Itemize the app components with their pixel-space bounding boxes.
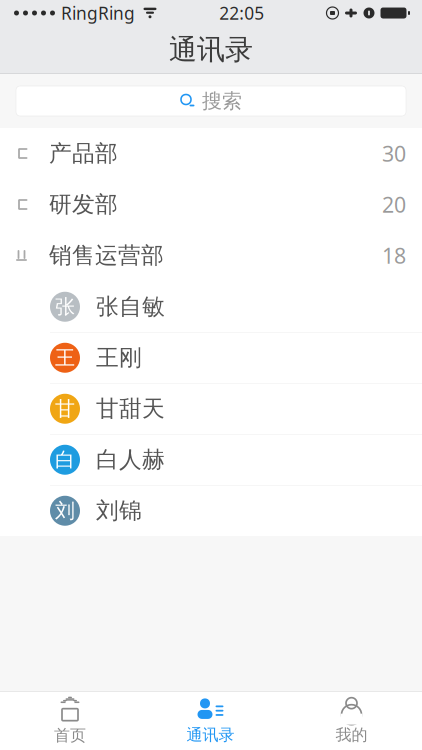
staticText: 18 [382, 241, 406, 270]
staticText: 刘锦 [96, 497, 142, 525]
staticText: 甘 [55, 396, 75, 421]
button[interactable]: 王 [0, 332, 422, 383]
staticText: 首页 [54, 726, 86, 745]
staticText: 通讯录 [169, 33, 253, 67]
button[interactable]: 张 [0, 281, 422, 332]
staticText: RingRing [61, 1, 135, 24]
button[interactable]: 我的 [281, 692, 422, 750]
staticText: 张自敏 [96, 293, 165, 321]
staticText: 搜索 [202, 89, 242, 113]
button[interactable]: 搜索 [0, 74, 422, 128]
staticText: 产品部 [49, 140, 118, 167]
staticText: 30 [382, 139, 406, 168]
staticText: 我的 [335, 725, 367, 745]
staticText: 研发部 [49, 191, 118, 218]
staticText: 通讯录 [186, 725, 234, 745]
staticText: 刘 [55, 498, 75, 523]
staticText: 甘甜天 [96, 395, 165, 423]
button[interactable]: 首页 [0, 692, 140, 750]
staticText: 张 [55, 294, 75, 319]
staticText: 20 [382, 190, 406, 219]
button[interactable]: 通讯录 [140, 692, 281, 750]
staticText: 销售运营部 [49, 242, 164, 269]
button[interactable]: 刘 [0, 485, 422, 536]
staticText: 22:05 [219, 1, 264, 24]
button[interactable]: 销售运营部 [0, 230, 422, 281]
staticText: 王刚 [96, 344, 142, 372]
staticText: 白人赫 [96, 446, 165, 474]
staticText: 王 [55, 345, 75, 370]
staticText: 白 [55, 447, 75, 472]
button[interactable]: 白 [0, 434, 422, 485]
button[interactable]: 产品部 [0, 128, 422, 179]
button[interactable]: 研发部 [0, 179, 422, 230]
button[interactable]: 甘 [0, 383, 422, 434]
